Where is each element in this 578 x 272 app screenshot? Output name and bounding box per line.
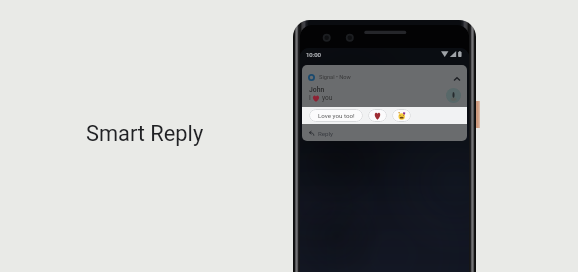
staticText: Signal • Now xyxy=(319,74,351,81)
staticText: 10:00 xyxy=(306,51,321,58)
staticText: you xyxy=(322,94,333,102)
button[interactable] xyxy=(368,109,387,122)
staticText: I xyxy=(309,94,311,102)
staticText: John xyxy=(309,86,325,94)
staticText: Smart Reply xyxy=(86,121,204,147)
staticText: Reply xyxy=(318,130,334,137)
button[interactable]: Collapse notification xyxy=(452,74,462,84)
button[interactable]: Reply xyxy=(302,124,467,141)
button[interactable] xyxy=(392,109,411,122)
button[interactable]: Love you too! xyxy=(309,109,363,122)
staticText: Love you too! xyxy=(318,112,355,119)
